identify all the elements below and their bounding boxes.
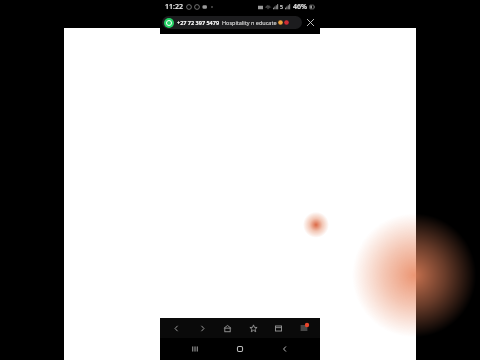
staticText: 5 [280,4,283,11]
button[interactable]: Bookmarks [244,319,262,337]
button[interactable]: +27 72 397 5479 [162,16,302,29]
staticText: 46% [293,2,307,12]
button[interactable]: Menu [295,319,313,337]
staticText: 11:22 [165,2,183,12]
button[interactable]: Back [167,319,185,337]
staticText: +27 72 397 5479 [177,19,220,26]
button[interactable]: Tabs [269,319,287,337]
button[interactable]: Home [218,319,236,337]
button[interactable]: Home [230,339,250,359]
button[interactable]: Recent apps [185,339,205,359]
button[interactable]: Forward [193,319,211,337]
button[interactable]: Back [275,339,295,359]
staticText: Hospitality n educate [222,19,277,26]
button[interactable]: Dismiss notification [302,14,318,30]
